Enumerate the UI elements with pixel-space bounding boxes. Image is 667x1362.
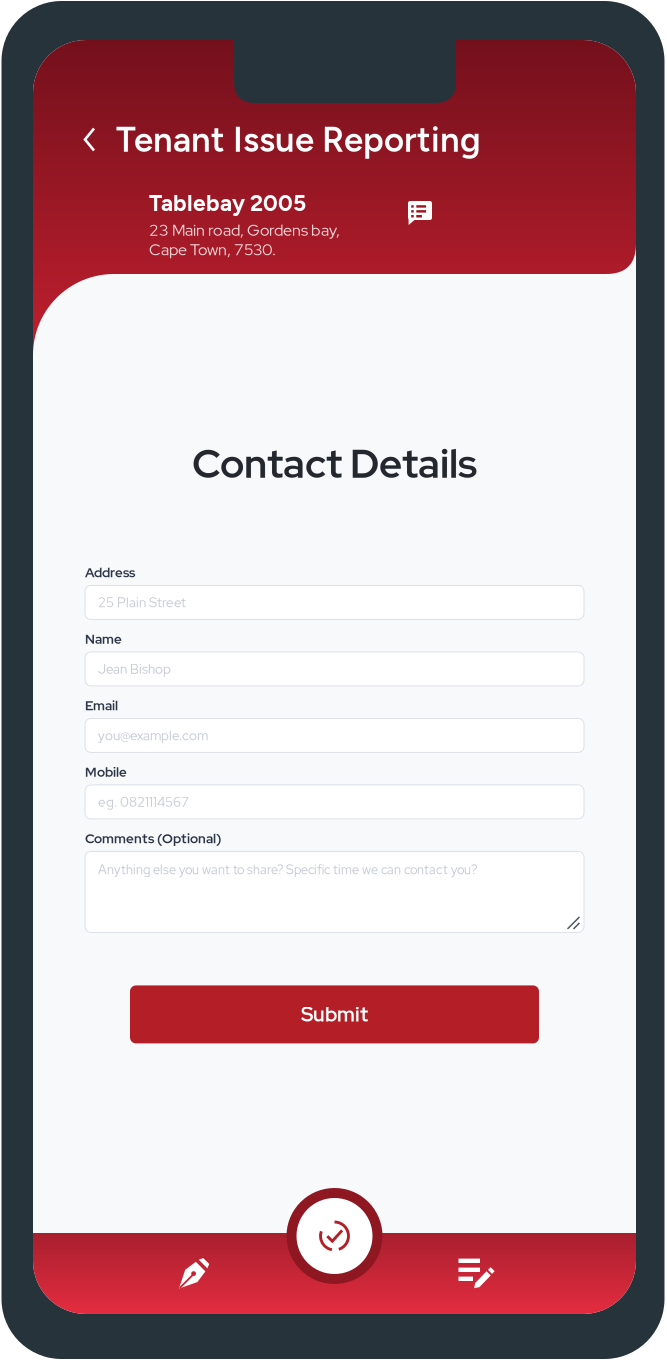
staticText: Mobile xyxy=(85,763,127,781)
button[interactable]: eg. 0821114567 xyxy=(85,785,584,819)
staticText: Submit xyxy=(301,1001,368,1028)
staticText: eg. 0821114567 xyxy=(98,793,189,811)
button[interactable]: Jean Bishop xyxy=(85,652,584,686)
staticText: Anything else you want to share? Specifi… xyxy=(98,861,477,878)
staticText: Jean Bishop xyxy=(98,660,171,678)
staticText: 23 Main road, Gordens bay, xyxy=(149,219,340,241)
staticText: Address xyxy=(85,564,135,581)
staticText: Email xyxy=(85,697,118,714)
staticText: Comments (Optional) xyxy=(85,830,221,847)
button[interactable]: Back xyxy=(68,114,116,165)
button[interactable]: My reports xyxy=(412,1233,542,1314)
staticText: Tenant Issue Reporting xyxy=(116,119,481,160)
staticText: Name xyxy=(85,630,122,648)
staticText: Contact Details xyxy=(192,437,477,490)
button[interactable]: 25 Plain Street xyxy=(85,585,584,619)
staticText: 25 Plain Street xyxy=(98,594,186,611)
button[interactable]: Messages xyxy=(395,191,445,235)
button[interactable]: you@example.com xyxy=(85,718,584,752)
staticText: Cape Town, 7530. xyxy=(149,239,276,260)
staticText: Tablebay 2005 xyxy=(149,189,306,217)
button[interactable]: Anything else you want to share? Specifi… xyxy=(85,851,584,932)
button[interactable]: Submit xyxy=(130,985,539,1043)
staticText: you@example.com xyxy=(98,727,208,744)
button[interactable]: Report an issue xyxy=(129,1233,259,1314)
